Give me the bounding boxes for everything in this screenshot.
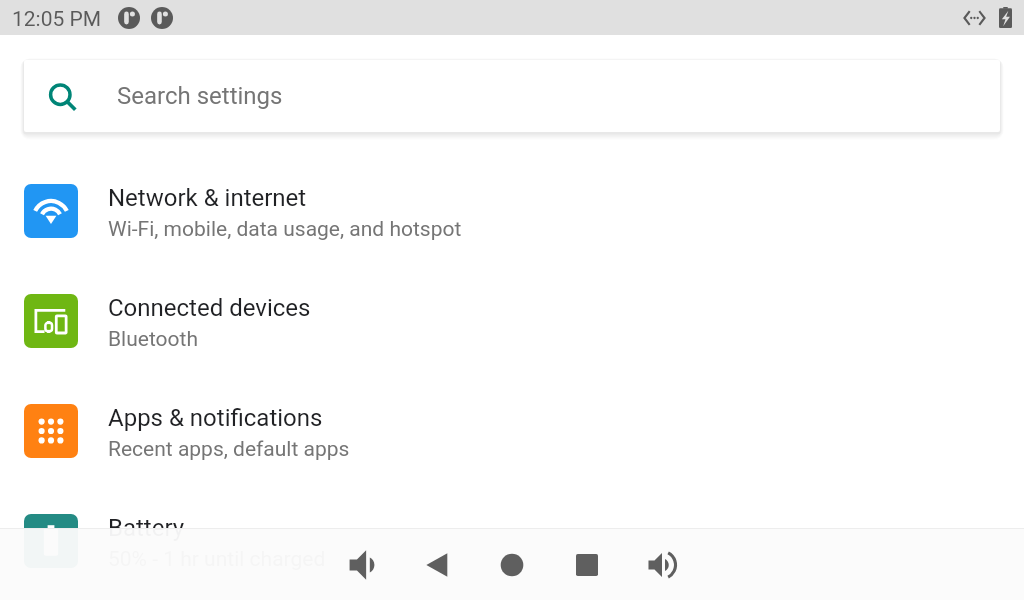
staticText: Connected devices bbox=[108, 294, 311, 322]
button[interactable]: Recent apps bbox=[563, 541, 611, 589]
staticText: Wi-Fi, mobile, data usage, and hotspot bbox=[108, 217, 462, 242]
button[interactable]: Volume down bbox=[338, 541, 386, 589]
button[interactable]: Connected devices bbox=[0, 266, 1024, 376]
other: Notification bbox=[118, 7, 140, 29]
button[interactable]: Home bbox=[488, 541, 536, 589]
button[interactable]: Battery bbox=[0, 486, 1024, 596]
button[interactable]: Back bbox=[413, 541, 461, 589]
staticText: Apps & notifications bbox=[108, 404, 323, 432]
other: USB debugging bbox=[964, 11, 985, 25]
button[interactable]: Apps & notifications bbox=[0, 376, 1024, 486]
staticText: Recent apps, default apps bbox=[108, 437, 350, 462]
button[interactable]: Volume up bbox=[638, 541, 686, 589]
button[interactable]: Network & internet bbox=[0, 156, 1024, 266]
other: Battery charging bbox=[999, 7, 1012, 28]
staticText: Bluetooth bbox=[108, 327, 198, 352]
staticText: 12:05 PM bbox=[12, 7, 102, 32]
staticText: Search settings bbox=[117, 82, 283, 110]
button[interactable]: Search settings bbox=[24, 60, 1000, 132]
staticText: Network & internet bbox=[108, 184, 307, 212]
staticText: Battery bbox=[108, 514, 185, 542]
other: Notification bbox=[151, 7, 173, 29]
